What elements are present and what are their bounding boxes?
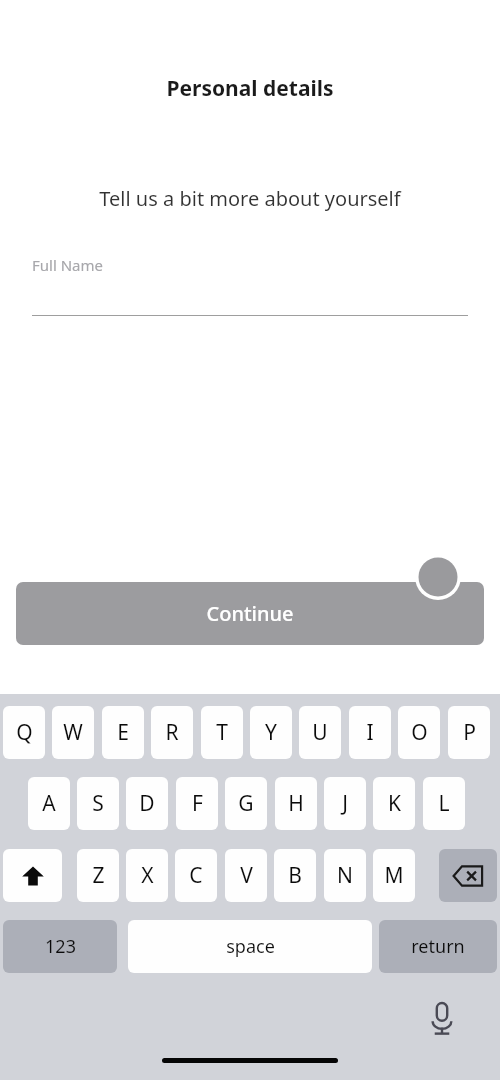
- button[interactable]: K: [373, 777, 415, 830]
- button[interactable]: M: [373, 849, 415, 902]
- button[interactable]: I: [349, 706, 391, 759]
- staticText: S: [92, 789, 104, 818]
- staticText: H: [288, 789, 304, 818]
- button[interactable]: T: [201, 706, 243, 759]
- button[interactable]: A: [28, 777, 70, 830]
- staticText: T: [216, 718, 228, 747]
- staticText: M: [384, 861, 404, 890]
- button[interactable]: Full Name: [32, 246, 468, 316]
- staticText: B: [288, 861, 302, 890]
- other: Touch indicator: [415, 554, 461, 600]
- button[interactable]: O: [398, 706, 440, 759]
- button[interactable]: R: [151, 706, 193, 759]
- staticText: Personal details: [0, 74, 500, 103]
- staticText: E: [117, 718, 129, 747]
- staticText: W: [63, 718, 83, 747]
- staticText: U: [312, 718, 328, 747]
- staticText: space: [226, 934, 275, 959]
- button[interactable]: Continue: [16, 582, 484, 645]
- button[interactable]: Q: [3, 706, 45, 759]
- button[interactable]: F: [176, 777, 218, 830]
- staticText: P: [463, 718, 476, 747]
- staticText: L: [438, 789, 450, 818]
- staticText: F: [192, 789, 203, 818]
- staticText: 123: [45, 934, 76, 959]
- button[interactable]: return: [379, 920, 497, 973]
- button[interactable]: S: [77, 777, 119, 830]
- staticText: Continue: [206, 600, 294, 627]
- button[interactable]: E: [102, 706, 144, 759]
- staticText: O: [411, 718, 428, 747]
- staticText: X: [141, 861, 154, 890]
- button[interactable]: D: [126, 777, 168, 830]
- staticText: K: [388, 789, 401, 818]
- staticText: Y: [265, 718, 277, 747]
- button[interactable]: H: [275, 777, 317, 830]
- staticText: I: [366, 718, 374, 747]
- staticText: C: [189, 861, 203, 890]
- button[interactable]: B: [274, 849, 316, 902]
- staticText: D: [139, 789, 155, 818]
- staticText: Q: [16, 718, 33, 747]
- button[interactable]: N: [324, 849, 366, 902]
- staticText: Z: [92, 861, 105, 890]
- button[interactable]: C: [175, 849, 217, 902]
- button[interactable]: J: [324, 777, 366, 830]
- staticText: return: [411, 934, 465, 959]
- staticText: N: [337, 861, 353, 890]
- button[interactable]: X: [126, 849, 168, 902]
- staticText: V: [240, 861, 253, 890]
- staticText: R: [165, 718, 179, 747]
- button[interactable]: Dictate: [419, 996, 465, 1042]
- button[interactable]: 123: [3, 920, 117, 973]
- button[interactable]: V: [225, 849, 267, 902]
- button[interactable]: [3, 849, 62, 902]
- staticText: J: [342, 789, 348, 818]
- staticText: A: [42, 789, 56, 818]
- button[interactable]: Y: [250, 706, 292, 759]
- button[interactable]: G: [225, 777, 267, 830]
- button[interactable]: L: [423, 777, 465, 830]
- button[interactable]: Z: [77, 849, 119, 902]
- staticText: G: [238, 789, 254, 818]
- staticText: Full Name: [32, 255, 103, 275]
- button[interactable]: space: [128, 920, 372, 973]
- button[interactable]: P: [448, 706, 490, 759]
- button[interactable]: U: [299, 706, 341, 759]
- button[interactable]: Backspace: [439, 849, 497, 902]
- button[interactable]: W: [52, 706, 94, 759]
- staticText: Tell us a bit more about yourself: [0, 185, 500, 212]
